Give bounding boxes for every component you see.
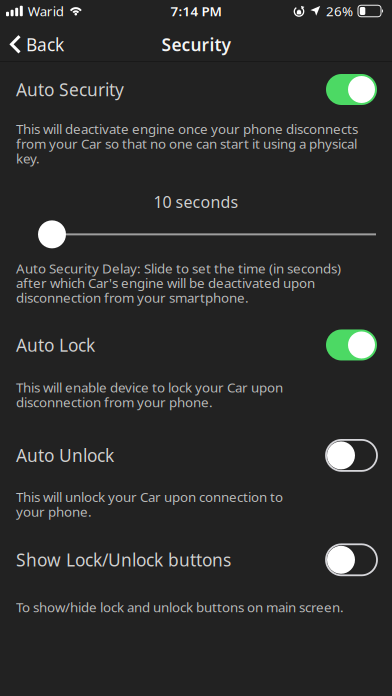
- button[interactable]: Auto Security Delay: [0, 220, 392, 248]
- button[interactable]: Show Lock/Unlock buttons: [326, 544, 377, 575]
- staticText: 26%: [326, 2, 353, 20]
- staticText: Security: [161, 33, 230, 56]
- staticText: Auto Security Delay: Slide to set the ti…: [16, 259, 341, 306]
- staticText: Back: [26, 33, 64, 56]
- button[interactable]: Back: [0, 33, 64, 56]
- button[interactable]: Auto Unlock: [326, 440, 377, 471]
- staticText: 10 seconds: [153, 191, 238, 212]
- staticText: Auto Lock: [16, 333, 95, 356]
- button[interactable]: Auto Lock: [326, 329, 377, 360]
- button[interactable]: Auto Security: [326, 74, 377, 105]
- staticText: Auto Unlock: [16, 444, 114, 467]
- staticText: To show/hide lock and unlock buttons on …: [16, 598, 344, 616]
- staticText: Warid: [28, 2, 64, 20]
- staticText: Auto Security: [16, 78, 124, 101]
- staticText: This will deactivate engine once your ph…: [16, 120, 358, 167]
- staticText: This will enable device to lock your Car…: [16, 378, 283, 411]
- staticText: 7:14 PM: [170, 2, 221, 20]
- staticText: This will unlock your Car upon connectio…: [16, 488, 283, 520]
- staticText: Show Lock/Unlock buttons: [16, 548, 231, 571]
